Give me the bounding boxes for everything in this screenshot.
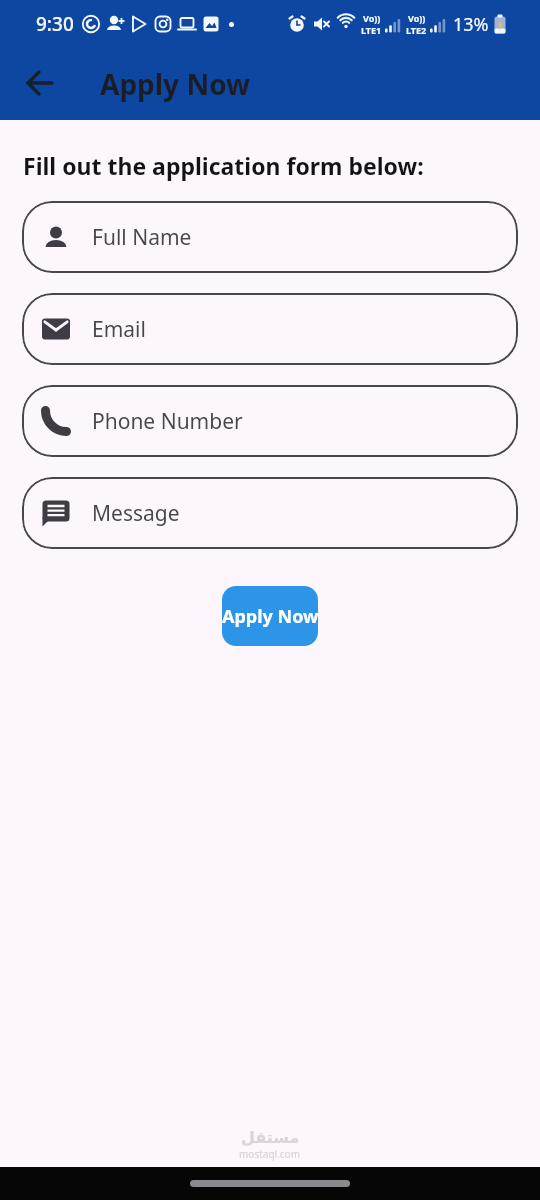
button[interactable]: Phone Number <box>22 385 518 457</box>
staticText: Apply Now <box>222 604 318 629</box>
button[interactable] <box>0 48 80 120</box>
button[interactable]: Apply Now <box>222 586 318 646</box>
staticText: Phone Number <box>92 407 243 436</box>
staticText: مستقل <box>241 1128 300 1147</box>
staticText: Message <box>92 499 180 528</box>
staticText: 9:30 <box>36 11 74 37</box>
staticText: Fill out the application form below: <box>23 150 424 181</box>
staticText: LTE2 <box>406 24 427 36</box>
button[interactable]: Email <box>22 293 518 365</box>
button[interactable]: Message <box>22 477 518 549</box>
button[interactable]: Full Name <box>22 201 518 273</box>
staticText: mostaql.com <box>239 1147 301 1161</box>
staticText: Full Name <box>92 223 192 252</box>
staticText: LTE1 <box>361 24 382 36</box>
staticText: Email <box>92 315 146 344</box>
staticText: Vo)) <box>408 12 426 24</box>
staticText: Apply Now <box>100 65 251 103</box>
staticText: 13% <box>453 12 489 37</box>
staticText: Vo)) <box>363 12 381 24</box>
